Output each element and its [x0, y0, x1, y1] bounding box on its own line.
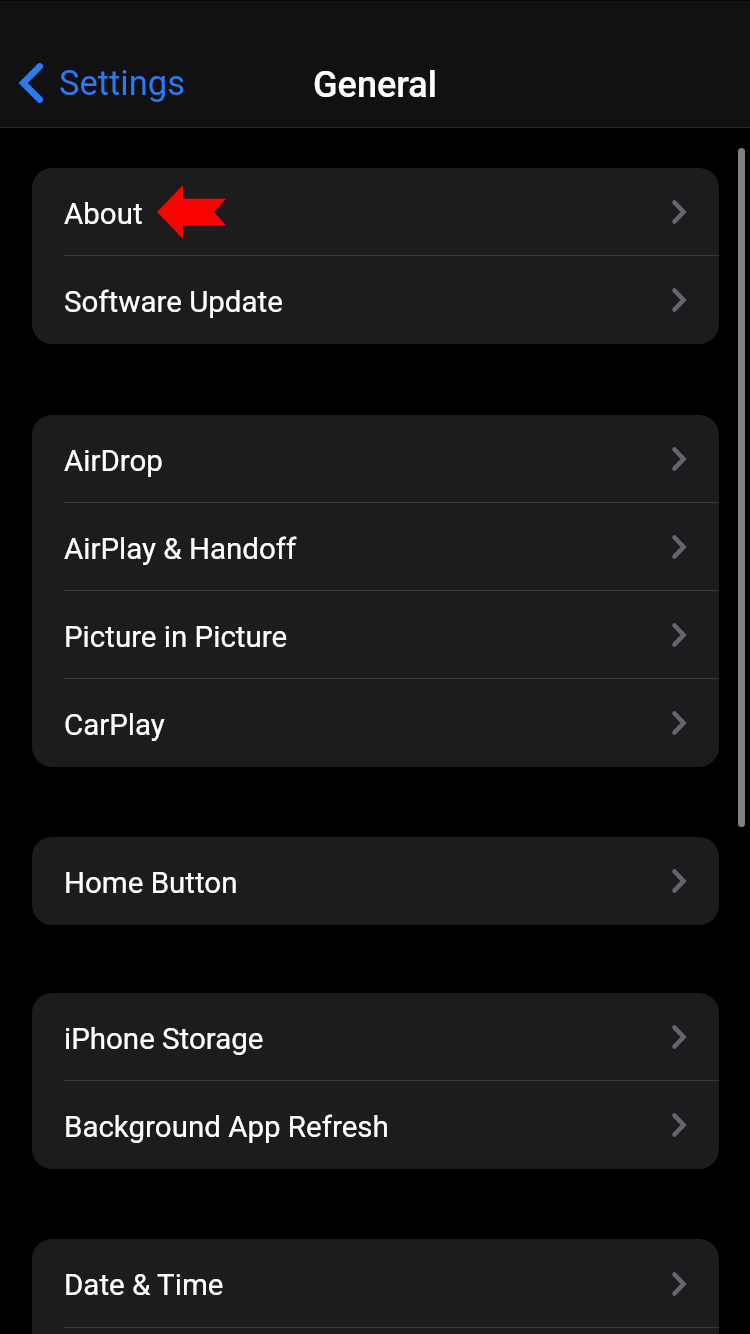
staticText: CarPlay	[64, 708, 165, 743]
button[interactable]: Picture in Picture	[32, 591, 719, 679]
button[interactable]: Home Button	[32, 837, 719, 925]
button[interactable]: Software Update	[32, 256, 719, 344]
button[interactable]: Back to Settings	[17, 54, 185, 112]
staticText: Settings	[59, 63, 185, 103]
button[interactable]: Date & Time	[32, 1239, 719, 1328]
staticText: iPhone Storage	[64, 1022, 264, 1057]
staticText: Home Button	[64, 866, 238, 901]
button[interactable]: Background App Refresh	[32, 1081, 719, 1169]
staticText: Picture in Picture	[64, 620, 288, 655]
staticText: AirPlay & Handoff	[64, 532, 297, 567]
staticText: AirDrop	[64, 444, 163, 479]
button[interactable]: AirDrop	[32, 415, 719, 503]
staticText: General	[313, 64, 437, 106]
button[interactable]: About	[32, 168, 719, 256]
button[interactable]: iPhone Storage	[32, 993, 719, 1081]
staticText: About	[64, 197, 143, 232]
staticText: Date & Time	[64, 1268, 224, 1303]
staticText: Background App Refresh	[64, 1110, 389, 1145]
button[interactable]: AirPlay & Handoff	[32, 503, 719, 591]
staticText: Software Update	[64, 285, 283, 320]
button[interactable]: CarPlay	[32, 679, 719, 767]
other: Annotation arrow pointing at About	[157, 185, 226, 239]
